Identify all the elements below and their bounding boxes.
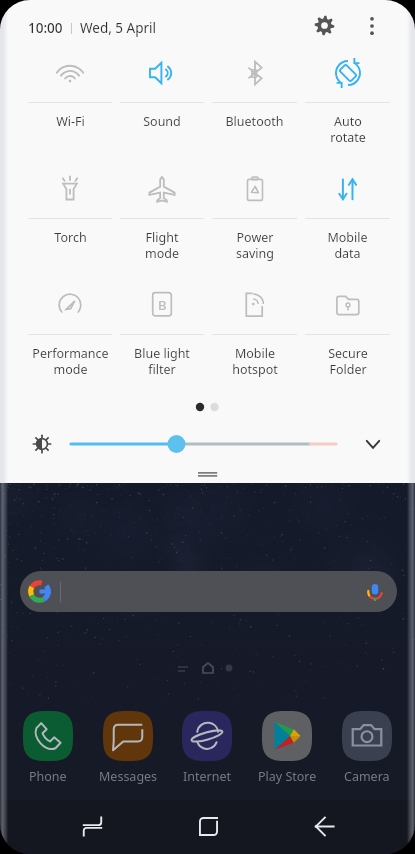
staticText: Wed, 5 April [80, 19, 157, 37]
button[interactable]: Brightness slider [62, 428, 345, 460]
staticText: Auto rotate [330, 113, 366, 145]
button[interactable]: Torch [24, 160, 116, 246]
button[interactable]: Power saving [208, 160, 301, 261]
button[interactable]: Expand [357, 428, 389, 460]
staticText: Power saving [236, 229, 274, 261]
button[interactable]: B [208, 44, 301, 130]
button[interactable]: Internet [168, 711, 246, 785]
button[interactable]: Camera [328, 711, 406, 785]
staticText: B [158, 296, 167, 314]
button[interactable]: Settings [307, 8, 342, 43]
staticText: Secure Folder [328, 345, 368, 377]
button[interactable]: Auto rotate [301, 44, 394, 145]
button[interactable]: More options [354, 8, 389, 43]
button[interactable]: Back [297, 800, 351, 854]
button[interactable]: Recent apps [65, 800, 119, 854]
staticText: Camera [344, 768, 390, 785]
button[interactable]: Secure Folder [301, 276, 394, 377]
staticText: Messages [99, 768, 158, 785]
staticText: Sound [143, 113, 181, 130]
button[interactable]: Performance mode [24, 276, 116, 377]
staticText: Mobile data [327, 229, 368, 261]
button[interactable]: Phone [9, 711, 87, 785]
staticText: Performance mode [32, 345, 109, 377]
button[interactable]: Home [181, 800, 235, 854]
staticText: Blue light filter [134, 345, 190, 377]
staticText: Wi-Fi [56, 113, 85, 130]
staticText: Bluetooth [225, 113, 284, 130]
staticText: Phone [29, 768, 67, 785]
staticText: Mobile hotspot [232, 345, 278, 377]
staticText: Torch [54, 229, 87, 246]
button[interactable]: Brightness [26, 428, 58, 460]
button[interactable]: Mobile hotspot [208, 276, 301, 377]
button[interactable]: Mobile data [301, 160, 394, 261]
staticText: Internet [183, 768, 231, 785]
staticText: Play Store [258, 768, 317, 785]
staticText: 10:00 [28, 19, 63, 37]
button[interactable]: B [116, 276, 208, 377]
button[interactable]: Messages [89, 711, 167, 785]
button[interactable]: Flight mode [116, 160, 208, 261]
staticText: B [250, 64, 259, 82]
staticText: Flight mode [145, 229, 179, 261]
button[interactable] [20, 571, 397, 612]
button[interactable]: Sound [116, 44, 208, 130]
button[interactable]: Play Store [248, 711, 326, 785]
button[interactable]: Wi-Fi [24, 44, 116, 130]
